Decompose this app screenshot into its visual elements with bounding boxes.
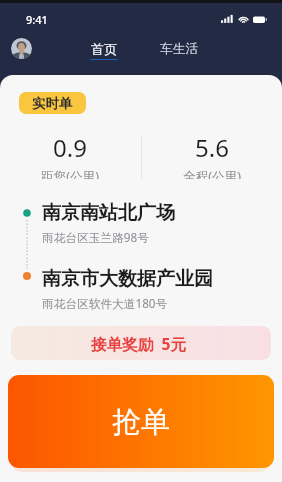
staticText: 抢单	[112, 404, 170, 441]
staticText: 0.9	[53, 131, 87, 164]
staticText: 车生活	[160, 41, 199, 57]
button[interactable]: 接单奖励 5元	[11, 326, 271, 360]
button[interactable]: 车生活	[155, 41, 203, 59]
button[interactable]: 抢单	[8, 375, 274, 468]
staticText: 接单奖励 5元	[91, 333, 186, 354]
staticText: 9:41	[26, 12, 48, 27]
staticText: 雨花台区软件大道180号	[42, 295, 168, 311]
button[interactable]: Profile	[11, 38, 32, 59]
button[interactable]: 首页	[84, 41, 124, 60]
staticText: 首页	[91, 41, 118, 58]
staticText: 距您(公里)	[41, 168, 99, 179]
staticText: 南京南站北广场	[42, 201, 175, 225]
staticText: 雨花台区玉兰路98号	[42, 229, 149, 245]
staticText: 南京市大数据产业园	[42, 267, 213, 291]
staticText: 5.6	[195, 131, 229, 164]
staticText: 实时单	[32, 95, 73, 112]
button[interactable]: 实时单	[19, 92, 86, 114]
staticText: 全程(公里)	[183, 168, 241, 179]
